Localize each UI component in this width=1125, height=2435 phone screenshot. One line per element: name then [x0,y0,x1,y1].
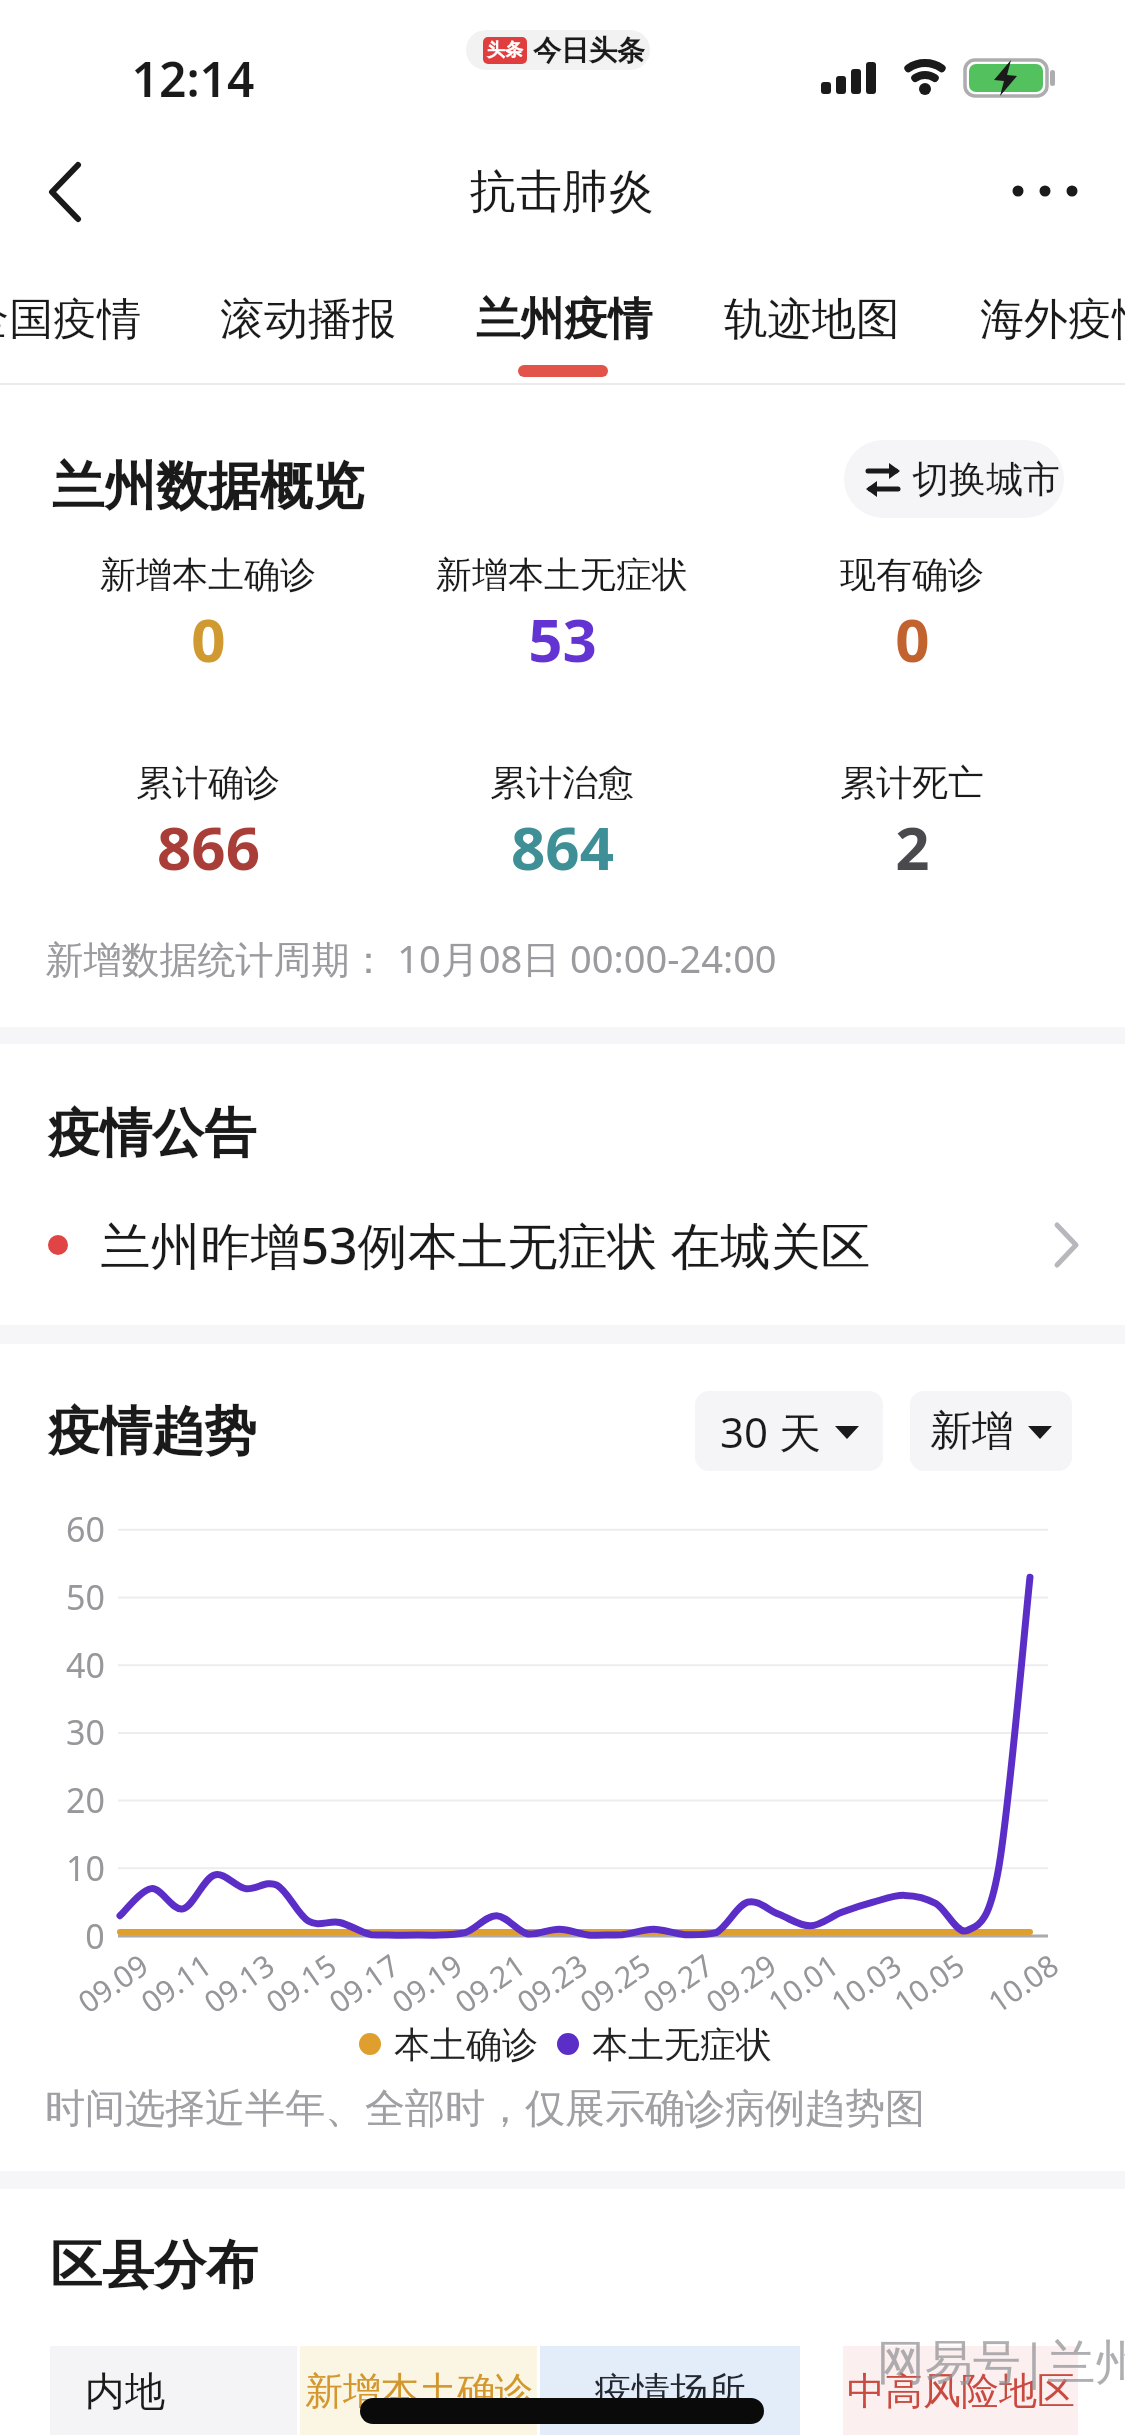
staticText: 新增本土无症状 [436,552,688,597]
staticText: 现有确诊 [840,552,984,597]
staticText: 切换城市 [912,456,1060,503]
staticText: 疫情场所 [594,2367,746,2415]
staticText: 12:14 [131,46,255,102]
staticText: 滚动播报 [220,292,396,347]
button[interactable]: 兰州昨增53例本土无症状 在城关区 [0,1205,1125,1285]
staticText: 09.21 [446,1944,532,2021]
staticText: 兰州疫情 [476,292,652,347]
staticText: 09.29 [697,1944,783,2021]
staticText: 网易号|兰州蘭 [855,2328,1125,2398]
staticText: 累计治愈 [490,760,634,805]
staticText: 区县分布 [50,2233,258,2299]
staticText: 本土确诊 [394,2022,538,2067]
staticText: 抗击肺炎 [470,163,654,221]
staticText: 全国疫情 [0,292,141,347]
staticText: 53 [528,598,597,674]
staticText: 海外疫情 [980,292,1125,347]
staticText: 本土无症状 [592,2022,772,2067]
button[interactable]: 滚动播报 [208,288,408,350]
staticText: 2 [895,806,930,882]
button[interactable]: 内地 [50,2346,297,2435]
staticText: 09.19 [383,1944,469,2021]
button[interactable]: 30 天 [695,1391,883,1471]
staticText: 10.05 [885,1944,971,2021]
button[interactable]: 切换城市 [844,440,1064,518]
staticText: 时间选择近半年、全部时，仅展示确诊病例趋势图 [45,2083,925,2133]
staticText: 新增 [930,1405,1014,1458]
staticText: 新增本土确诊 [305,2367,533,2415]
staticText: 09.09 [69,1944,155,2021]
staticText: 新增数据统计周期： 10月08日 00:00-24:00 [45,932,777,984]
button[interactable] [1000,165,1090,219]
staticText: 10 [66,1845,105,1891]
staticText: 疫情趋势 [48,1399,256,1465]
staticText: 头条 [487,39,523,62]
staticText: 30 天 [720,1403,821,1460]
staticText: 09.11 [132,1944,218,2021]
staticText: 0 [895,598,930,674]
staticText: 50 [66,1574,105,1620]
staticText: 866 [157,806,260,882]
staticText: 0 [85,1913,105,1959]
staticText: 今日头条 [533,33,645,67]
staticText: 累计确诊 [136,760,280,805]
staticText: 20 [66,1777,105,1823]
staticText: 10.01 [759,1944,845,2021]
staticText: 0 [191,598,226,674]
staticText: 40 [66,1642,105,1688]
staticText: 中高风险地区 [847,2367,1075,2415]
staticText: 10.08 [979,1944,1065,2021]
staticText: 864 [511,806,614,882]
staticText: 内地 [85,2366,165,2416]
staticText: 兰州数据概览 [52,454,364,520]
staticText: 60 [66,1506,105,1552]
button[interactable] [30,160,100,224]
staticText: 09.13 [195,1944,281,2021]
staticText: 09.25 [571,1944,657,2021]
button[interactable]: 中高风险地区 [843,2346,1078,2435]
staticText: 累计死亡 [840,760,984,805]
staticText: 09.23 [508,1944,594,2021]
staticText: 10.03 [822,1944,908,2021]
staticText: 轨迹地图 [724,292,900,347]
button[interactable]: 头条 [466,30,650,70]
staticText: 30 [66,1709,105,1755]
button[interactable]: 新增本土确诊 [300,2346,537,2435]
staticText: 09.27 [634,1944,720,2021]
staticText: 09.17 [320,1944,406,2021]
staticText: 疫情公告 [48,1101,256,1167]
staticText: 09.15 [257,1944,343,2021]
button[interactable]: 兰州疫情 [464,288,664,350]
staticText: 兰州昨增53例本土无症状 在城关区 [100,1211,871,1279]
button[interactable]: 新增 [910,1391,1072,1471]
button[interactable]: 疫情场所 [540,2346,800,2435]
button[interactable]: 轨迹地图 [712,288,912,350]
button[interactable]: 海外疫情 [968,288,1125,350]
staticText: 新增本土确诊 [100,552,316,597]
